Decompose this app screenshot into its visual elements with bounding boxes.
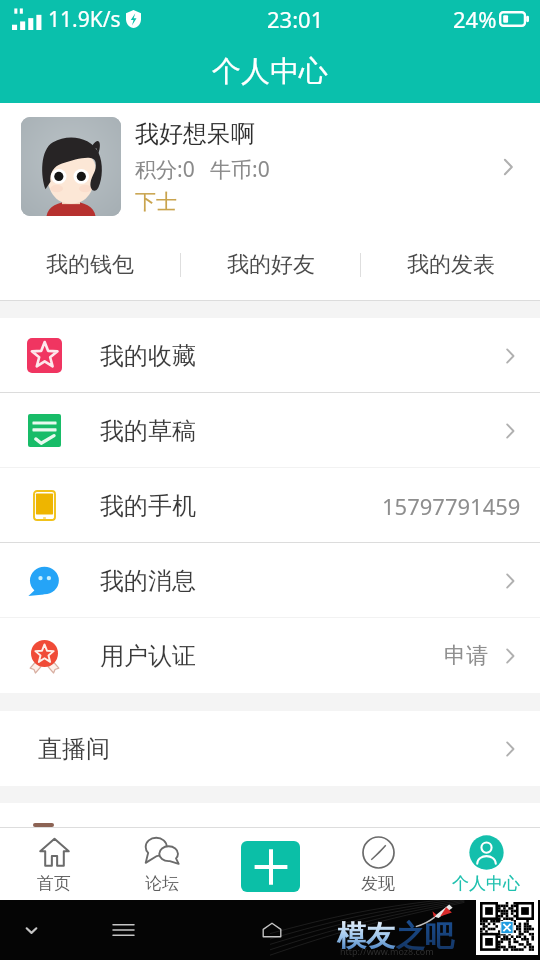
button[interactable]: 我的发表 bbox=[361, 230, 540, 300]
staticText: 申请 bbox=[444, 642, 488, 670]
button[interactable]: Recent apps bbox=[100, 900, 146, 960]
staticText: 我的消息 bbox=[100, 566, 196, 596]
button[interactable]: 首页 bbox=[0, 828, 108, 900]
staticText: 直播间 bbox=[38, 734, 110, 764]
staticText: 模友 bbox=[337, 918, 395, 955]
staticText: 15797791459 bbox=[382, 491, 521, 521]
button[interactable]: 用户认证 bbox=[0, 618, 540, 693]
staticText: 发现 bbox=[361, 873, 395, 894]
staticText: 我的发表 bbox=[407, 251, 495, 279]
staticText: 牛币:0 bbox=[210, 155, 270, 184]
button[interactable]: 我的草稿 bbox=[0, 393, 540, 468]
staticText: 24% bbox=[453, 4, 497, 34]
staticText: 我好想呆啊 bbox=[135, 119, 255, 149]
button[interactable]: Home bbox=[249, 900, 295, 960]
staticText: 首页 bbox=[37, 873, 71, 894]
button[interactable]: 我的消息 bbox=[0, 543, 540, 618]
staticText: 我的好友 bbox=[227, 251, 315, 279]
staticText: 我的草稿 bbox=[100, 416, 196, 446]
button[interactable]: 我的收藏 bbox=[0, 318, 540, 393]
button[interactable]: 我的钱包 bbox=[0, 230, 180, 300]
staticText: 下士 bbox=[135, 189, 177, 215]
staticText: 我的手机 bbox=[100, 491, 196, 521]
staticText: 个人中心 bbox=[212, 53, 328, 90]
staticText: 论坛 bbox=[145, 873, 179, 894]
staticText: 积分:0 bbox=[135, 155, 195, 184]
staticText: 个人中心 bbox=[452, 873, 520, 894]
button[interactable] bbox=[0, 803, 540, 827]
button[interactable]: 直播间 bbox=[0, 711, 540, 786]
button[interactable]: 我好想呆啊 bbox=[0, 103, 540, 230]
staticText: http://www.moz8.com bbox=[340, 945, 434, 957]
staticText: 23:01 bbox=[267, 4, 324, 34]
button[interactable]: 我的好友 bbox=[181, 230, 360, 300]
button[interactable]: 我的手机 bbox=[0, 468, 540, 543]
button[interactable]: 发现 bbox=[324, 828, 432, 900]
staticText: 我的收藏 bbox=[100, 341, 196, 371]
button[interactable]: 论坛 bbox=[108, 828, 216, 900]
staticText: 用户认证 bbox=[100, 641, 196, 671]
staticText: 11.9K/s bbox=[48, 5, 121, 34]
button[interactable]: 个人中心 bbox=[432, 828, 540, 900]
staticText: 我的钱包 bbox=[46, 251, 134, 279]
button[interactable]: Back bbox=[6, 900, 56, 960]
button[interactable]: Create post bbox=[241, 841, 300, 892]
staticText: 之吧 bbox=[396, 918, 454, 955]
